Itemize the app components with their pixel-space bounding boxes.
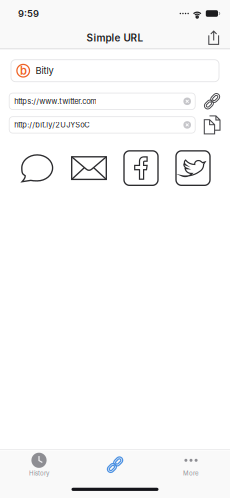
staticText: https://www.twitter.com — [14, 97, 97, 106]
button[interactable]: Shorten link — [203, 93, 221, 110]
button[interactable]: More — [153, 450, 229, 479]
button[interactable]: Share — [208, 30, 230, 45]
button[interactable]: Share via Messages — [11, 149, 63, 187]
staticText: Simple URL — [86, 32, 143, 44]
button[interactable]: Clear text — [183, 97, 195, 106]
staticText: More — [183, 469, 199, 477]
staticText: b — [20, 64, 27, 77]
button[interactable]: Copy short link — [204, 115, 221, 135]
button[interactable]: History — [1, 450, 77, 479]
staticText: Bitly — [35, 65, 53, 76]
staticText: http://bit.ly/2UJYSoC — [14, 120, 89, 129]
button[interactable]: Clear text — [183, 120, 195, 129]
staticText: History — [29, 469, 49, 477]
button[interactable]: Share via Mail — [63, 149, 115, 187]
button[interactable]: Share on Twitter — [167, 149, 219, 187]
button[interactable]: Shorten — [77, 450, 153, 479]
staticText: 9:59 — [18, 8, 39, 19]
button[interactable]: Share on Facebook — [115, 149, 167, 187]
